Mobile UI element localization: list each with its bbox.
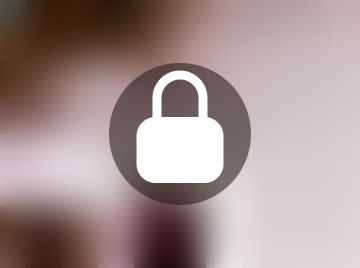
button[interactable]: Unlock photo (109, 63, 251, 205)
